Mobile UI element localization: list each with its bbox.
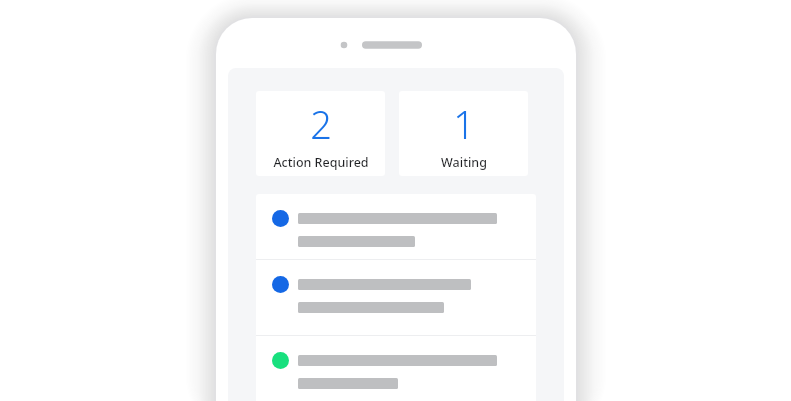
button[interactable]: Request needing action	[256, 194, 536, 259]
staticText: Action Required	[273, 154, 369, 171]
button[interactable]: 2	[256, 91, 385, 176]
button[interactable]: 1	[399, 91, 528, 176]
staticText: 2	[310, 98, 332, 150]
staticText: Waiting	[441, 154, 487, 171]
staticText: 1	[453, 98, 475, 150]
button[interactable]: Request needing action	[256, 260, 536, 335]
button[interactable]: Completed request	[256, 336, 536, 401]
